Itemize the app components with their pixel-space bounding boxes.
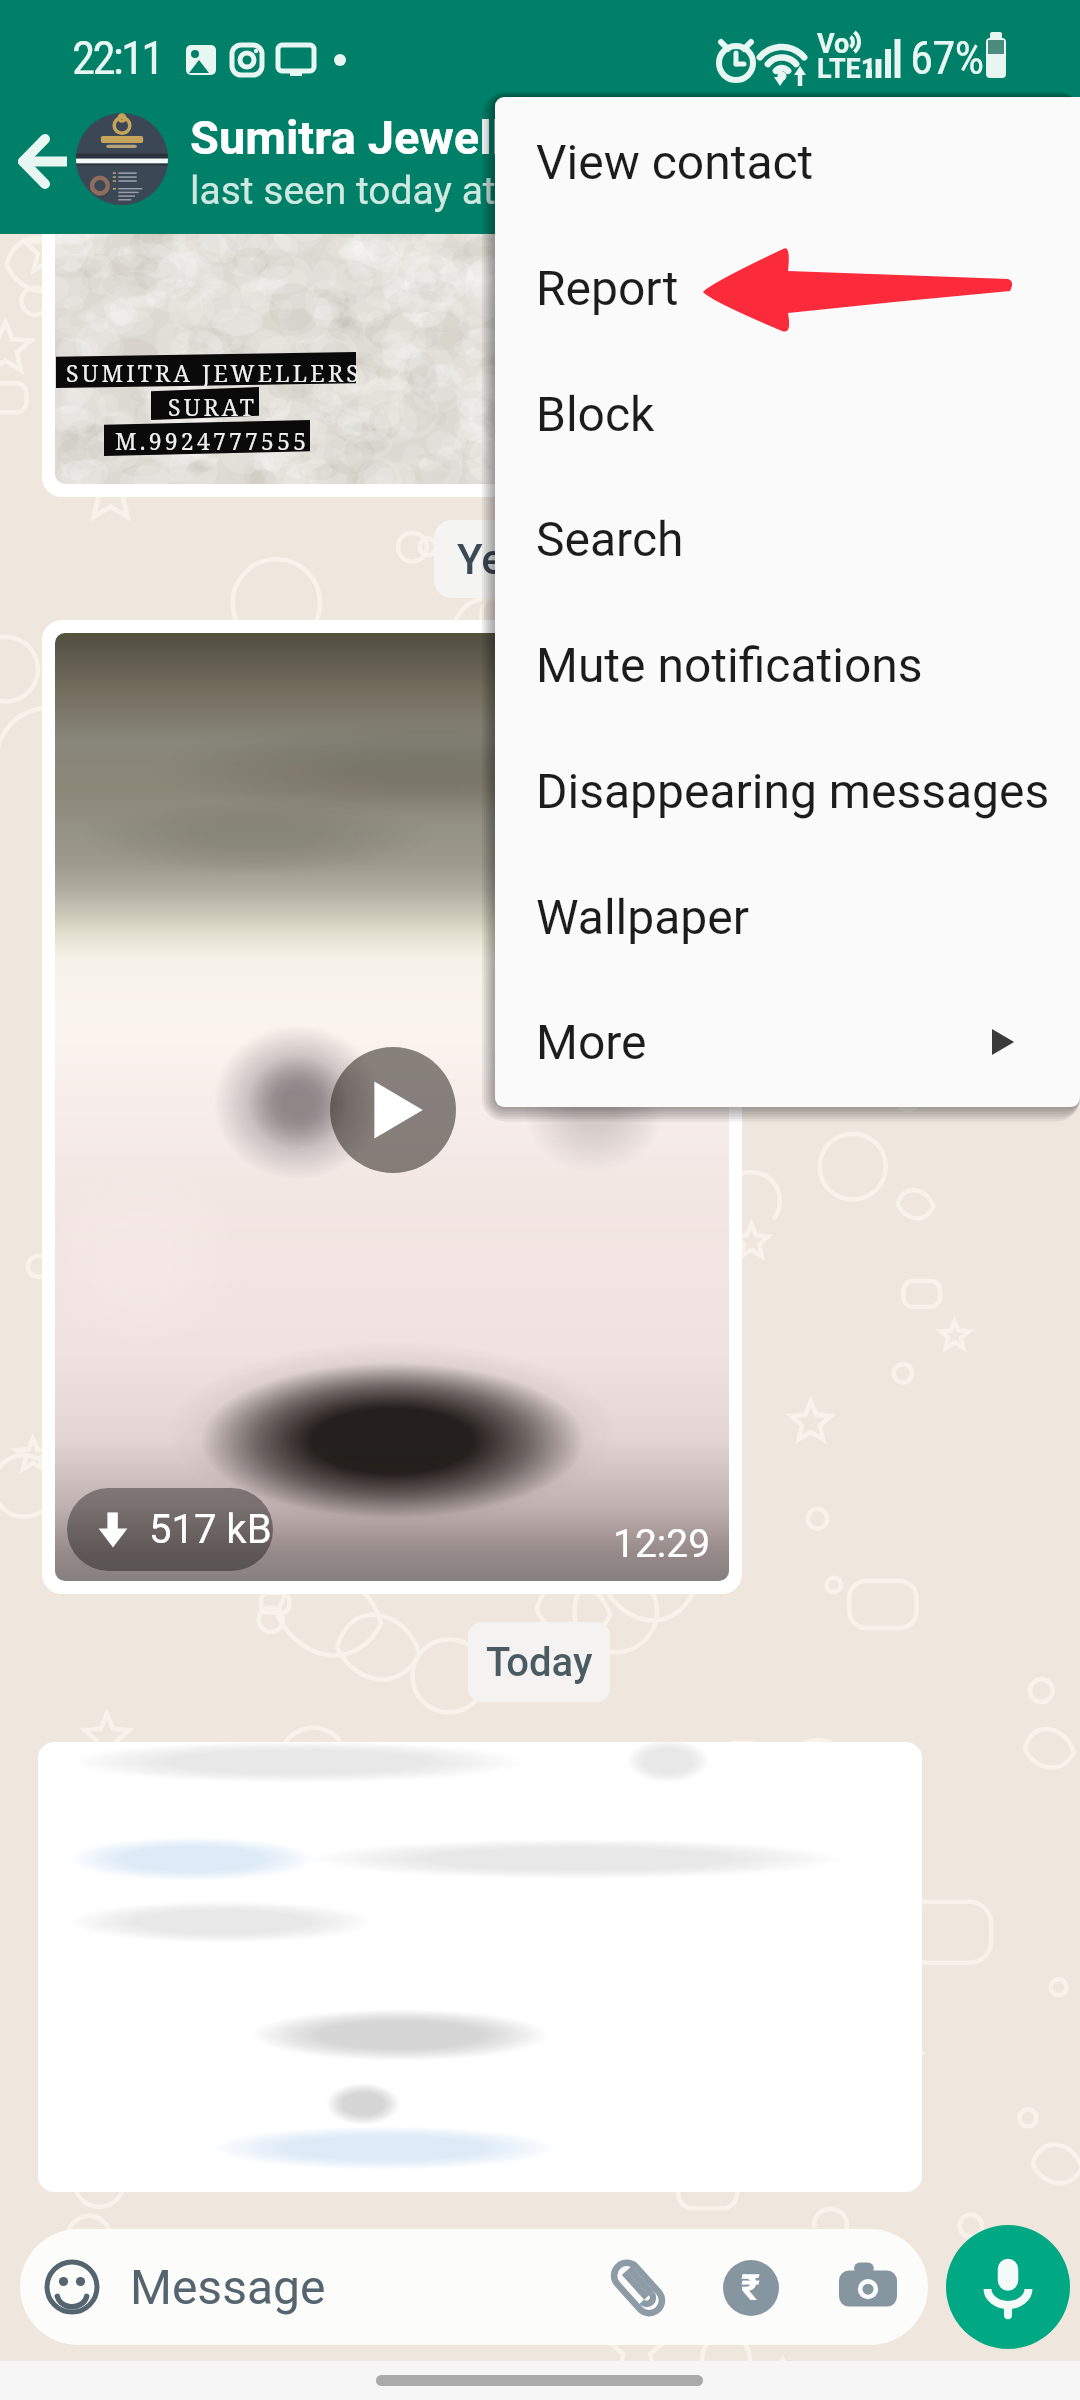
staticText: Block bbox=[536, 386, 655, 442]
staticText: Sumitra Jewellers bbox=[190, 110, 571, 165]
staticText: 517 kB bbox=[149, 1506, 272, 1553]
button[interactable]: Search bbox=[495, 477, 1080, 601]
button[interactable]: Today bbox=[468, 1622, 610, 1702]
staticText: 12:29 bbox=[613, 1521, 711, 1567]
button[interactable]: Block bbox=[495, 352, 1080, 476]
staticText: SUMITRA JEWELLERS bbox=[66, 357, 362, 388]
staticText: Vo bbox=[817, 28, 850, 60]
staticText: Disappearing messages bbox=[536, 763, 1050, 819]
button[interactable]: Wallpaper bbox=[495, 855, 1080, 979]
button[interactable]: Profile photo bbox=[76, 113, 168, 205]
button[interactable]: Camera bbox=[828, 2248, 908, 2328]
staticText: 22:11 bbox=[72, 30, 162, 85]
staticText: Report bbox=[536, 260, 679, 316]
button[interactable]: Yes bbox=[434, 520, 764, 598]
staticText: Today bbox=[486, 1639, 593, 1686]
staticText: 67% bbox=[910, 30, 984, 85]
staticText: M.9924777555 bbox=[115, 425, 310, 456]
button[interactable]: Disappearing messages bbox=[495, 729, 1080, 853]
staticText: Yes bbox=[457, 535, 526, 584]
button[interactable]: Play video bbox=[55, 633, 729, 1581]
button[interactable]: Mute notifications bbox=[495, 603, 1080, 727]
staticText: View contact bbox=[536, 134, 814, 190]
staticText: Wallpaper bbox=[536, 889, 749, 945]
staticText: LTE1 bbox=[817, 53, 877, 85]
button[interactable]: Emoji bbox=[20, 2229, 928, 2345]
button[interactable] bbox=[38, 1742, 922, 2192]
button[interactable]: Emoji bbox=[44, 2259, 100, 2315]
staticText: Search bbox=[536, 511, 684, 567]
button[interactable]: 517 kB bbox=[67, 1488, 273, 1571]
staticText: Message bbox=[130, 2259, 326, 2315]
button[interactable]: Attach bbox=[598, 2248, 678, 2328]
button[interactable]: View contact bbox=[495, 100, 1080, 224]
button[interactable]: More bbox=[495, 980, 1080, 1104]
staticText: SURAT bbox=[168, 391, 258, 422]
button[interactable]: Record voice message bbox=[946, 2225, 1070, 2349]
button[interactable]: SUMITRA JEWELLERS bbox=[55, 209, 729, 484]
button[interactable]: Payment bbox=[711, 2248, 791, 2328]
staticText: Mute notifications bbox=[536, 637, 923, 693]
staticText: More bbox=[536, 1014, 647, 1070]
button[interactable]: Back bbox=[0, 116, 90, 206]
staticText: ₹ bbox=[741, 2267, 761, 2309]
button[interactable]: Report bbox=[495, 226, 1080, 350]
staticText: last seen today at 20:32 bbox=[190, 168, 603, 214]
button[interactable]: Play video bbox=[330, 1047, 456, 1173]
